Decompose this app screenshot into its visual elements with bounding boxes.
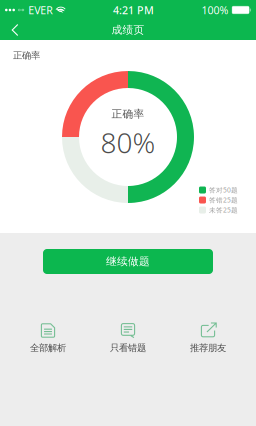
staticText: 4:21 PM xyxy=(113,3,154,17)
staticText: 正确率 xyxy=(13,50,40,61)
staticText: 100% xyxy=(202,3,229,17)
staticText: 正确率 xyxy=(111,107,144,120)
staticText: 答对50题 xyxy=(209,186,238,194)
staticText: EVER xyxy=(28,3,53,17)
staticText: 推荐朋友 xyxy=(190,342,226,354)
staticText: 80% xyxy=(100,124,155,161)
staticText: 继续做题 xyxy=(106,255,150,268)
button[interactable]: 继续做题 xyxy=(43,249,213,274)
button[interactable]: 只看错题 xyxy=(88,323,168,354)
staticText: 只看错题 xyxy=(110,342,146,354)
staticText: 成绩页 xyxy=(111,23,144,36)
button[interactable]: Back xyxy=(0,20,30,40)
button[interactable]: 推荐朋友 xyxy=(168,323,248,354)
staticText: 未答25题 xyxy=(209,206,238,214)
staticText: 全部解析 xyxy=(30,342,66,354)
staticText: 答错25题 xyxy=(209,196,238,204)
button[interactable]: 全部解析 xyxy=(8,323,88,354)
